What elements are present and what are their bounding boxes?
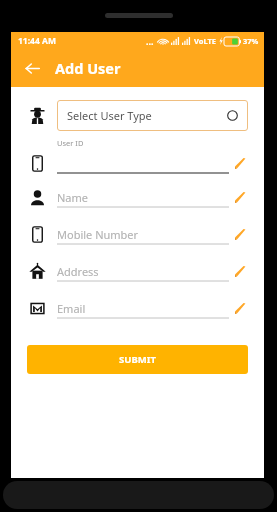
button[interactable]: Edit User ID: [29, 149, 248, 177]
staticText: VoLTE: [194, 36, 216, 46]
staticText: Address: [57, 264, 99, 279]
staticText: Mobile Number: [57, 227, 139, 242]
button[interactable]: Mobile Number: [29, 220, 248, 248]
button[interactable]: Edit Name: [233, 190, 248, 205]
staticText: 11:44 AM: [18, 35, 56, 47]
staticText: Add User: [55, 58, 121, 78]
staticText: SUBMIT: [119, 353, 156, 366]
staticText: User ID: [57, 138, 84, 148]
staticText: 37%: [243, 36, 259, 46]
button[interactable]: SUBMIT: [27, 345, 248, 374]
button[interactable]: Edit Mobile Number: [233, 227, 248, 242]
button[interactable]: Name: [29, 183, 248, 211]
button[interactable]: Email: [29, 294, 248, 322]
button[interactable]: Edit Email: [233, 301, 248, 316]
staticText: Email: [57, 301, 86, 316]
button[interactable]: Select User Type: [57, 100, 248, 131]
button[interactable]: Back: [18, 54, 46, 82]
staticText: Name: [57, 190, 89, 205]
button[interactable]: Edit Address: [233, 264, 248, 279]
button[interactable]: Edit User ID: [233, 156, 248, 171]
button[interactable]: Address: [29, 257, 248, 285]
staticText: Select User Type: [67, 108, 227, 123]
staticText: ...: [146, 35, 154, 47]
